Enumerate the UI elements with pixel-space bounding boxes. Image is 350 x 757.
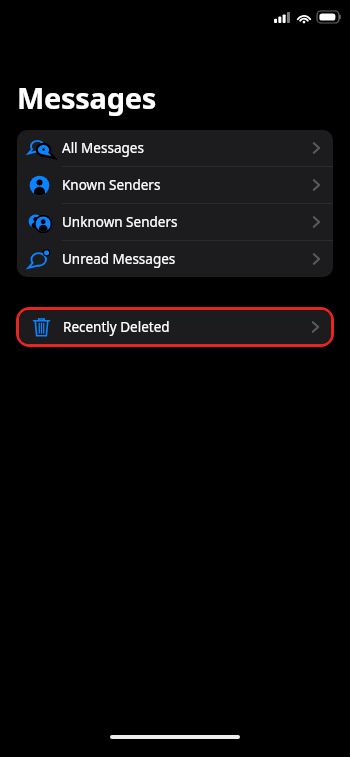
staticText: Unknown Senders	[62, 213, 178, 231]
button[interactable]: Recently Deleted	[19, 310, 331, 344]
other: Recently Deleted	[33, 317, 50, 337]
other: Unread Messages	[29, 248, 51, 270]
staticText: Recently Deleted	[63, 318, 170, 336]
staticText: Unread Messages	[62, 250, 176, 268]
button[interactable]: All Messages	[17, 130, 333, 166]
other: All Messages	[29, 137, 51, 159]
staticText: Known Senders	[62, 176, 161, 194]
other: Known Senders	[29, 175, 50, 196]
button[interactable]: Unread Messages	[17, 241, 333, 277]
button[interactable]: Unknown Senders	[17, 204, 333, 240]
staticText: Messages	[17, 78, 156, 117]
button[interactable]: Known Senders	[17, 167, 333, 203]
staticText: All Messages	[62, 139, 144, 157]
other: Unknown Senders	[28, 211, 51, 234]
